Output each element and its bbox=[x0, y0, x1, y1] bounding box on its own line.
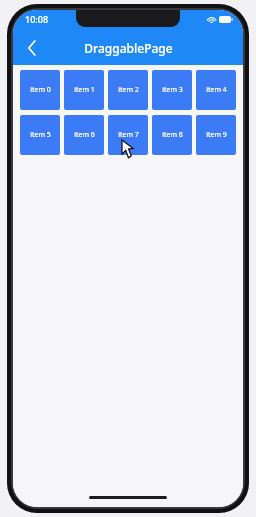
staticText: item 2 bbox=[118, 85, 139, 95]
staticText: item 5 bbox=[30, 130, 51, 140]
staticText: item 1 bbox=[74, 85, 95, 95]
staticText: 10:08 bbox=[25, 13, 49, 25]
button[interactable]: item 4 bbox=[196, 70, 236, 110]
staticText: item 7 bbox=[118, 130, 139, 140]
button[interactable]: item 2 bbox=[108, 70, 148, 110]
button[interactable]: item 8 bbox=[152, 115, 192, 155]
staticText: item 0 bbox=[30, 85, 51, 95]
button[interactable]: item 3 bbox=[152, 70, 192, 110]
button[interactable]: item 0 bbox=[20, 70, 60, 110]
staticText: item 3 bbox=[162, 85, 183, 95]
staticText: DraggablePage bbox=[84, 40, 173, 56]
button[interactable]: item 1 bbox=[64, 70, 104, 110]
staticText: item 6 bbox=[74, 130, 95, 140]
staticText: item 4 bbox=[206, 85, 227, 95]
button[interactable]: Back bbox=[17, 33, 47, 63]
button[interactable]: item 6 bbox=[64, 115, 104, 155]
button[interactable]: item 7 bbox=[108, 115, 148, 155]
staticText: item 9 bbox=[206, 130, 227, 140]
staticText: item 8 bbox=[162, 130, 183, 140]
button[interactable]: item 9 bbox=[196, 115, 236, 155]
button[interactable]: item 5 bbox=[20, 115, 60, 155]
